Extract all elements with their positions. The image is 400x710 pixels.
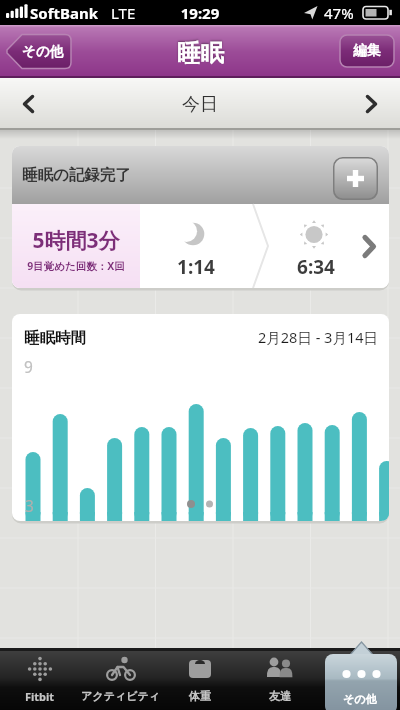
button[interactable] xyxy=(240,648,320,710)
staticText: LTE xyxy=(111,3,151,22)
staticText: 睡眠の記録完了 xyxy=(22,165,182,185)
staticText: 友達 xyxy=(269,689,291,703)
staticText: アクティビティ xyxy=(81,689,160,703)
staticText: 2月28日 - 3月14日 xyxy=(212,327,378,347)
staticText: 睡眠時間 xyxy=(24,328,124,348)
button[interactable]: 編集 xyxy=(340,35,394,67)
staticText: 今日 xyxy=(140,93,260,115)
staticText: その他 xyxy=(22,43,64,60)
staticText: 睡眠 xyxy=(177,38,224,68)
button[interactable]: 5時間3分 xyxy=(12,204,389,288)
staticText: 19:29 xyxy=(170,3,230,22)
staticText: 5時間3分 xyxy=(12,226,140,252)
staticText: 1:14 xyxy=(156,254,236,278)
button[interactable] xyxy=(160,648,240,710)
button[interactable]: 今日 xyxy=(0,78,400,130)
button[interactable] xyxy=(0,648,80,710)
button[interactable] xyxy=(333,157,378,200)
staticText: 9目覚めた回数：X回 xyxy=(12,259,140,273)
staticText: 編集 xyxy=(353,42,381,60)
button[interactable]: 睡眠時間 xyxy=(12,314,389,521)
staticText: 47% xyxy=(324,3,364,22)
staticText: 3 xyxy=(25,495,45,513)
button[interactable] xyxy=(80,648,160,710)
button[interactable] xyxy=(320,648,400,710)
staticText: 6:34 xyxy=(276,254,356,278)
button[interactable]: その他 xyxy=(14,34,72,69)
staticText: Fitbit xyxy=(25,689,55,704)
staticText: 9 xyxy=(24,356,44,374)
staticText: その他 xyxy=(343,692,377,706)
staticText: SoftBank xyxy=(30,3,120,22)
staticText: 体重 xyxy=(189,689,211,703)
